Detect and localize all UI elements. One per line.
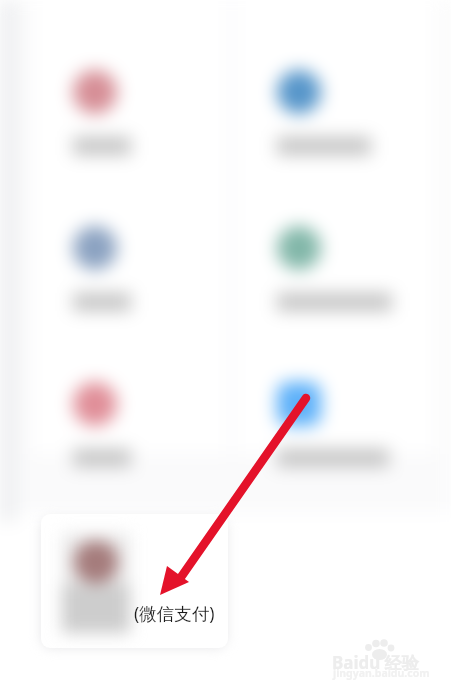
button[interactable]: App entry (32, 142, 228, 298)
button[interactable]: App entry (32, 0, 228, 142)
staticText: jingyan.baidu.com (333, 666, 430, 680)
button[interactable]: App entry (236, 298, 436, 454)
staticText: (微信支付) (134, 601, 215, 625)
button[interactable]: WeChat Pay entry (41, 514, 228, 648)
button[interactable]: App entry (236, 142, 436, 298)
button[interactable]: App entry (32, 298, 228, 454)
staticText: Baidu 经验 (332, 651, 419, 674)
button[interactable]: App entry (236, 0, 436, 142)
